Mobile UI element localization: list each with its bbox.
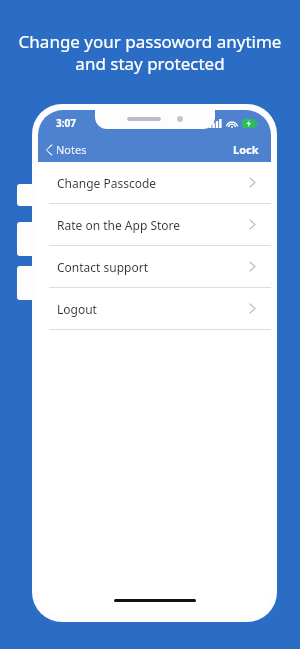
- button[interactable]: Logout: [38, 288, 271, 329]
- button[interactable]: Rate on the App Store: [38, 204, 271, 245]
- button[interactable]: Change Passcode: [38, 162, 271, 203]
- staticText: Rate on the App Store: [57, 217, 181, 233]
- staticText: Logout: [57, 301, 97, 317]
- staticText: Notes: [56, 142, 87, 157]
- staticText: Lock: [233, 142, 259, 157]
- button[interactable]: Notes: [38, 139, 95, 160]
- staticText: Change your passoword anytime and stay p…: [6, 30, 294, 75]
- button[interactable]: Contact support: [38, 246, 271, 287]
- button[interactable]: Lock: [223, 139, 271, 160]
- staticText: Contact support: [57, 259, 149, 275]
- staticText: 3:07: [56, 116, 76, 130]
- staticText: Change Passcode: [57, 175, 157, 191]
